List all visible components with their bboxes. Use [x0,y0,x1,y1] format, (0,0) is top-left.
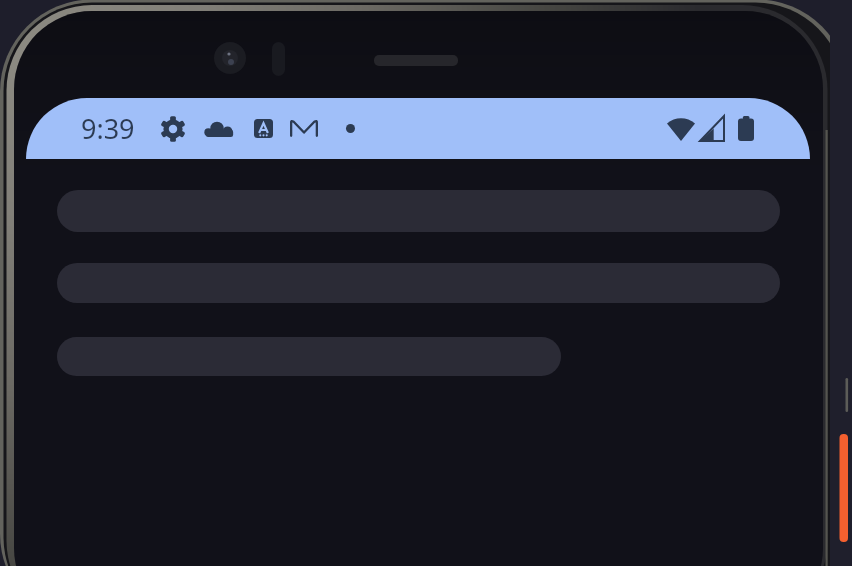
staticText: 9:39 [81,110,135,147]
button[interactable]: Loading item [57,190,780,232]
button[interactable]: Loading item [57,337,561,376]
button[interactable]: Loading item [57,263,780,303]
